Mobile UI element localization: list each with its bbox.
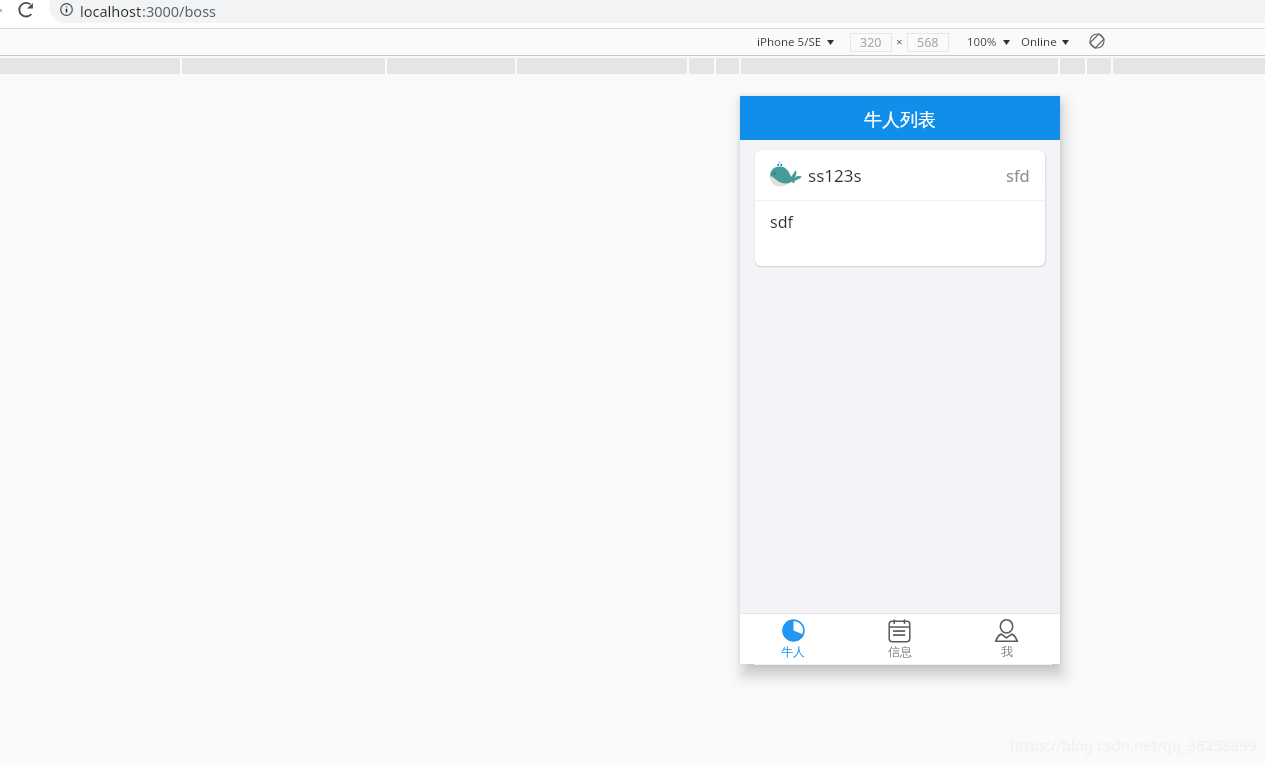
staticText: 我 <box>1001 644 1013 659</box>
button[interactable]: Site information <box>60 3 73 16</box>
staticText: localhost <box>80 1 142 21</box>
button[interactable]: Address bar <box>49 0 1265 23</box>
button[interactable]: 我 <box>953 614 1060 664</box>
button[interactable]: Reload <box>16 0 38 22</box>
button[interactable]: sdf <box>755 201 1045 266</box>
button[interactable]: Rotate device <box>1089 33 1105 49</box>
staticText: sfd <box>1006 164 1030 186</box>
button[interactable]: 信息 <box>846 614 953 664</box>
staticText: Online <box>1021 34 1057 50</box>
staticText: sdf <box>770 211 794 233</box>
staticText: 牛人 <box>781 644 805 659</box>
staticText: :3000/boss <box>142 1 217 21</box>
button[interactable]: iPhone 5/SE <box>757 31 834 53</box>
staticText: 牛人列表 <box>864 109 936 132</box>
staticText: × <box>896 34 903 50</box>
staticText: 568 <box>917 34 939 51</box>
staticText: ss123s <box>808 164 862 187</box>
staticText: https://blog.csdn.net/qq_36258899 <box>1010 735 1257 755</box>
button[interactable]: 牛人 <box>740 614 846 664</box>
button[interactable]: Online <box>1021 31 1069 53</box>
staticText: 信息 <box>888 644 912 659</box>
staticText: iPhone 5/SE <box>757 34 822 50</box>
button[interactable]: ss123s <box>755 150 1045 200</box>
button[interactable]: 100% <box>967 31 1010 53</box>
button[interactable]: 568 <box>907 33 949 52</box>
staticText: 100% <box>967 34 997 50</box>
staticText: 320 <box>860 34 882 51</box>
button[interactable]: 320 <box>850 33 892 52</box>
